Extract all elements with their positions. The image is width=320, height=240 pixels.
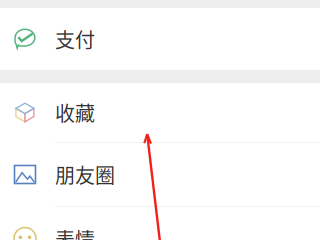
staticText: 支付 xyxy=(55,24,95,53)
staticText: 表情 xyxy=(55,224,95,240)
button[interactable]: 支付 xyxy=(0,8,320,70)
button[interactable]: 收藏 xyxy=(0,83,320,143)
button[interactable]: 表情 xyxy=(0,207,320,240)
staticText: 朋友圈 xyxy=(55,160,115,189)
staticText: 收藏 xyxy=(55,98,95,127)
button[interactable]: 朋友圈 xyxy=(0,143,320,207)
